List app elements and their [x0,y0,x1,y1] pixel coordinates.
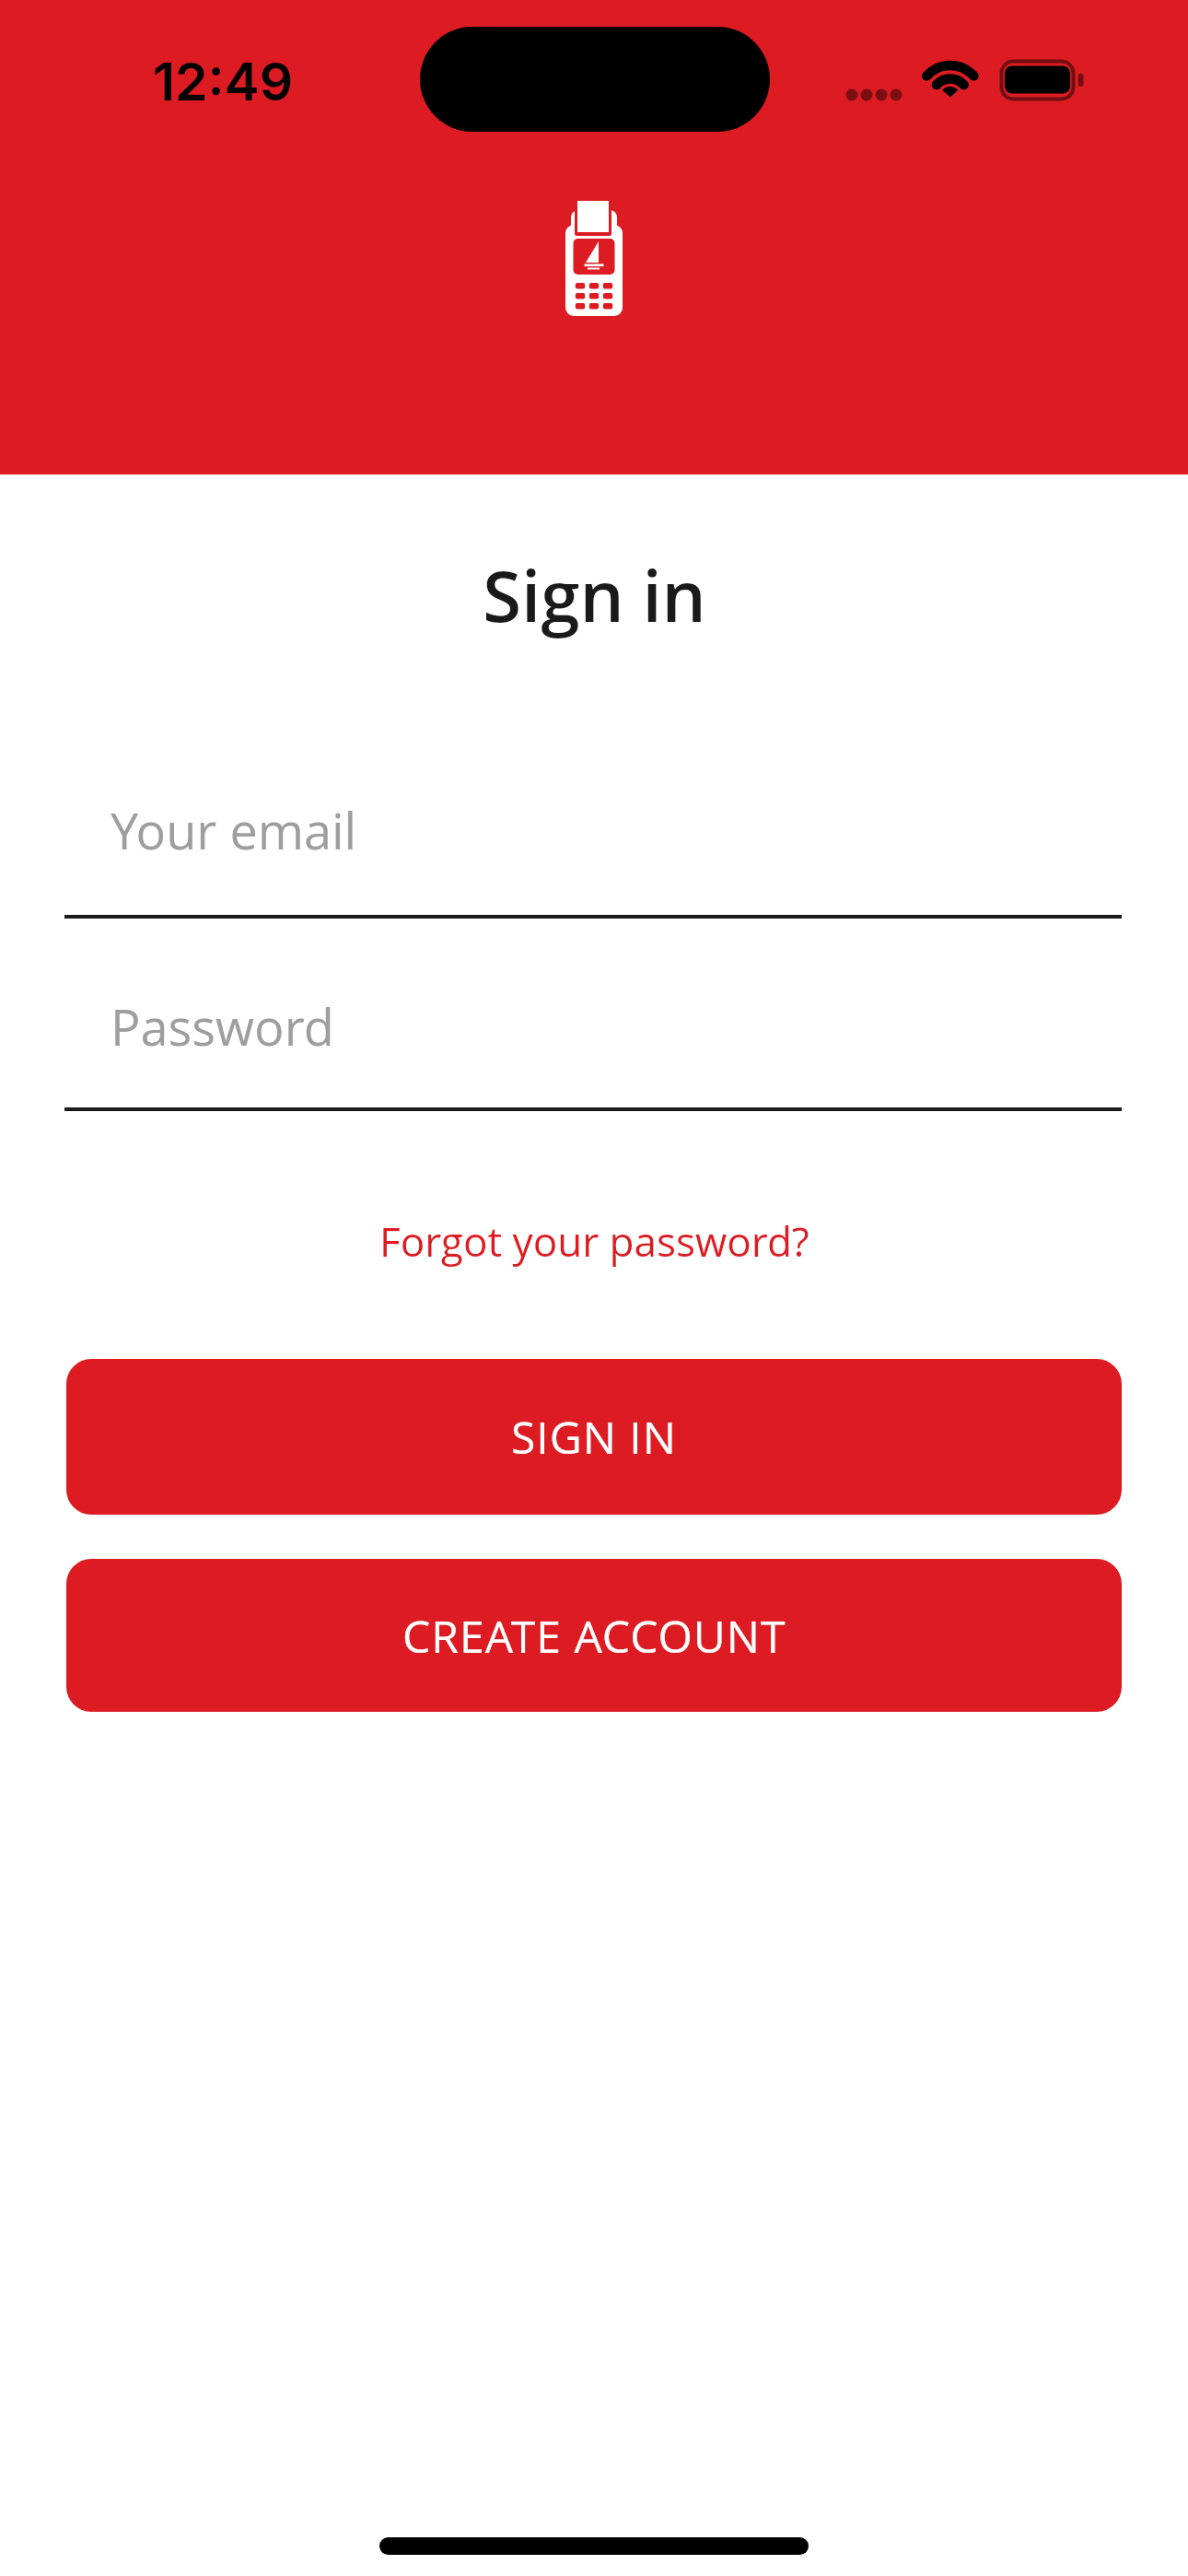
staticText: Forgot your password? [379,1213,809,1269]
staticText: SIGN IN [511,1407,677,1467]
staticText: 12:49 [153,50,294,113]
staticText: Password [111,992,334,1059]
staticText: Sign in [483,547,706,642]
staticText: CREATE ACCOUNT [402,1606,786,1666]
button[interactable]: Password [111,992,755,1059]
button[interactable]: SIGN IN [66,1359,1122,1515]
button[interactable]: Forgot your password? [0,1205,1188,1277]
button[interactable]: Your email [111,796,755,862]
button[interactable]: CREATE ACCOUNT [66,1559,1122,1712]
staticText: Your email [111,796,357,862]
